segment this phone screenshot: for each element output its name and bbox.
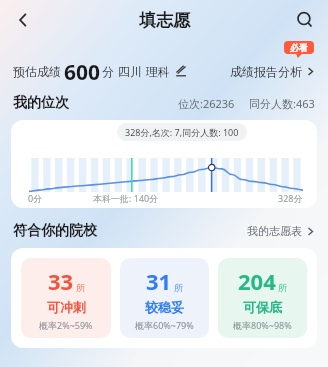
staticText: 位次:26236	[178, 96, 235, 111]
button[interactable]: 328分,名次: 7,同分人数: 100	[11, 120, 317, 208]
staticText: 31	[146, 266, 172, 296]
staticText: 分	[102, 64, 114, 79]
button[interactable]: 33	[21, 258, 111, 338]
staticText: 可冲刺	[47, 299, 86, 315]
button[interactable]: 31	[120, 258, 209, 338]
button[interactable]: 204	[218, 258, 307, 338]
staticText: 可保底	[243, 299, 282, 315]
button[interactable]: 成绩报告分析	[230, 64, 315, 79]
staticText: 328分,名次: 7,同分人数: 100	[125, 126, 239, 138]
staticText: 同分人数:463	[249, 96, 315, 111]
staticText: 328分	[278, 192, 303, 204]
staticText: 填志愿	[139, 10, 190, 31]
staticText: 概率60%~79%	[135, 319, 194, 330]
staticText: 600	[64, 58, 101, 84]
button[interactable]: 我的志愿表	[247, 224, 315, 238]
other: Edit	[175, 65, 187, 77]
staticText: 所	[278, 282, 287, 293]
button[interactable]: Back	[6, 3, 40, 37]
staticText: 四川	[118, 64, 142, 79]
staticText: 较稳妥	[145, 299, 184, 315]
staticText: 我的位次	[13, 94, 69, 112]
button[interactable]: 预估成绩	[13, 58, 187, 84]
staticText: 符合你的院校	[13, 222, 97, 240]
staticText: 33	[48, 266, 74, 296]
staticText: 预估成绩	[13, 64, 61, 79]
staticText: 成绩报告分析	[230, 64, 302, 79]
staticText: 204	[238, 266, 276, 296]
staticText: 概率2%~59%	[39, 319, 93, 330]
staticText: 概率80%~98%	[233, 319, 292, 330]
staticText: 所	[76, 282, 85, 293]
staticText: 我的志愿表	[247, 224, 302, 238]
staticText: 必看	[290, 42, 308, 53]
staticText: 0分	[28, 192, 43, 204]
button[interactable]: 必看	[284, 41, 314, 54]
staticText: 所	[174, 282, 183, 293]
staticText: 本科一批: 140分	[93, 192, 159, 204]
staticText: 理科	[146, 64, 170, 79]
button[interactable]: Search	[288, 3, 322, 37]
